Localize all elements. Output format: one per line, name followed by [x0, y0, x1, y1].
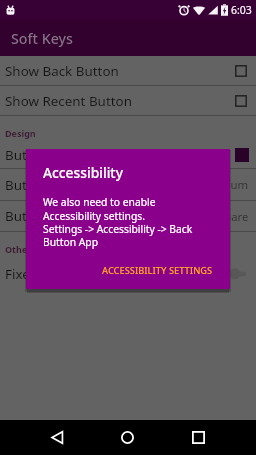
staticText: Other: [5, 243, 32, 255]
button[interactable]: Home: [112, 422, 143, 453]
button[interactable]: ACCESSIBILITY SETTINGS: [98, 259, 214, 282]
staticText: Accessibility: [43, 163, 123, 182]
button[interactable]: Button Color: [0, 141, 256, 168]
staticText: Button Size: [5, 176, 77, 194]
button[interactable]: Show Recent Button: [0, 86, 256, 115]
button[interactable]: Recent apps: [183, 422, 214, 453]
button[interactable]: Fixed Position: [0, 257, 256, 291]
staticText: Button Shape: [5, 207, 91, 225]
staticText: 6:03: [231, 3, 252, 17]
button[interactable]: Button Shape: [0, 201, 256, 231]
staticText: Design: [5, 127, 36, 139]
staticText: ACCESSIBILITY SETTINGS: [102, 264, 213, 277]
staticText: Soft Keys: [11, 29, 73, 48]
staticText: Show Recent Button: [5, 92, 132, 110]
button[interactable]: Back: [42, 422, 73, 453]
staticText: Show Back Button: [5, 62, 119, 80]
staticText: Button Color: [5, 146, 86, 164]
button[interactable]: Button Size: [0, 169, 256, 200]
staticText: Square: [211, 209, 249, 224]
staticText: Medium: [204, 177, 249, 192]
button[interactable]: Show Back Button: [0, 56, 256, 85]
staticText: We also need to enable Accessibility set…: [43, 195, 193, 249]
staticText: Fixed Position: [5, 265, 93, 283]
